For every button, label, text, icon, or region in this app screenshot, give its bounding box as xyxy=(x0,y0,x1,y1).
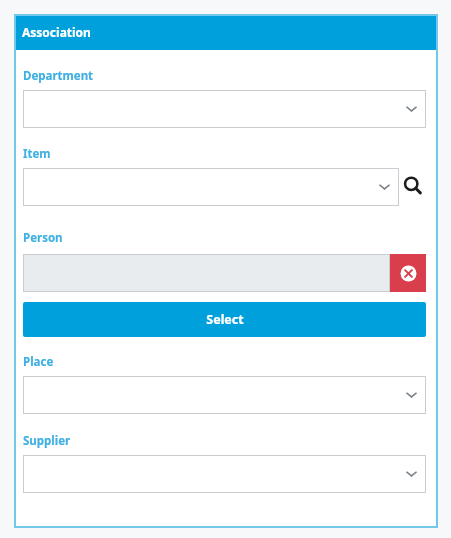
button[interactable]: Clear person xyxy=(390,254,426,292)
button[interactable] xyxy=(23,90,426,128)
button[interactable]: Select xyxy=(23,302,426,337)
button[interactable] xyxy=(23,376,426,414)
staticText: Department xyxy=(23,68,94,84)
button[interactable] xyxy=(23,455,426,493)
staticText: Association xyxy=(22,24,91,40)
staticText: Select xyxy=(206,311,244,328)
staticText: Place xyxy=(23,354,54,370)
button[interactable] xyxy=(23,254,390,292)
staticText: Supplier xyxy=(23,433,71,449)
staticText: Person xyxy=(23,230,63,246)
staticText: Item xyxy=(23,146,51,162)
button[interactable]: Association xyxy=(14,14,438,50)
button[interactable] xyxy=(23,168,399,206)
button[interactable]: Search xyxy=(399,171,426,201)
